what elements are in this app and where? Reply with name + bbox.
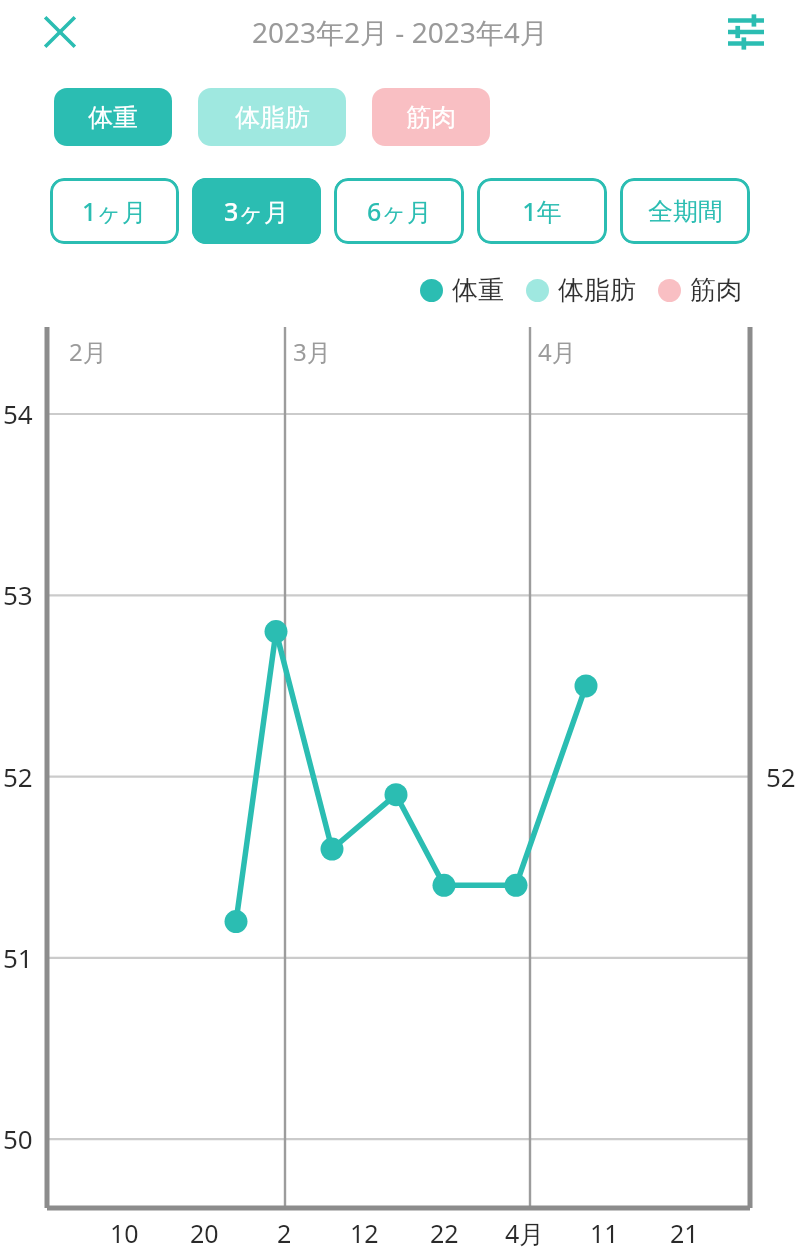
staticText: 22 xyxy=(430,1216,459,1250)
button[interactable]: 筋肉 xyxy=(372,88,490,146)
button[interactable]: 全期間 xyxy=(620,178,750,244)
staticText: 4月 xyxy=(505,1216,545,1250)
button[interactable]: 6ヶ月 xyxy=(334,178,464,244)
staticText: 20 xyxy=(190,1216,219,1250)
staticText: 53 xyxy=(3,577,33,612)
staticText: 体脂肪 xyxy=(558,274,636,307)
button[interactable]: 3ヶ月 xyxy=(192,178,321,244)
staticText: 3ヶ月 xyxy=(224,194,289,228)
staticText: 6ヶ月 xyxy=(367,194,432,228)
staticText: 11 xyxy=(590,1216,619,1250)
staticText: 体重 xyxy=(452,274,504,307)
staticText: 10 xyxy=(110,1216,139,1250)
staticText: 体重 xyxy=(88,102,138,133)
staticText: 1ヶ月 xyxy=(82,194,147,228)
button[interactable]: Close xyxy=(32,4,88,60)
staticText: 52 xyxy=(3,759,33,794)
staticText: 4月 xyxy=(538,335,576,368)
staticText: 2月 xyxy=(69,335,107,368)
staticText: 全期間 xyxy=(648,196,723,227)
staticText: 筋肉 xyxy=(690,274,742,307)
staticText: 筋肉 xyxy=(406,102,456,133)
button[interactable]: Filter settings xyxy=(718,4,774,60)
button[interactable]: 1年 xyxy=(477,178,607,244)
button[interactable]: 1ヶ月 xyxy=(50,178,179,244)
button[interactable]: 体脂肪 xyxy=(198,88,346,146)
staticText: 52 xyxy=(766,759,796,794)
staticText: 3月 xyxy=(293,335,331,368)
staticText: 12 xyxy=(350,1216,379,1250)
staticText: 2023年2月 - 2023年4月 xyxy=(252,13,548,51)
staticText: 体脂肪 xyxy=(235,102,310,133)
staticText: 51 xyxy=(3,940,33,975)
staticText: 2 xyxy=(277,1216,292,1250)
staticText: 54 xyxy=(3,396,33,431)
staticText: 1年 xyxy=(522,194,562,228)
staticText: 50 xyxy=(3,1121,33,1156)
staticText: 21 xyxy=(670,1216,699,1250)
button[interactable]: 体重 xyxy=(54,88,172,146)
